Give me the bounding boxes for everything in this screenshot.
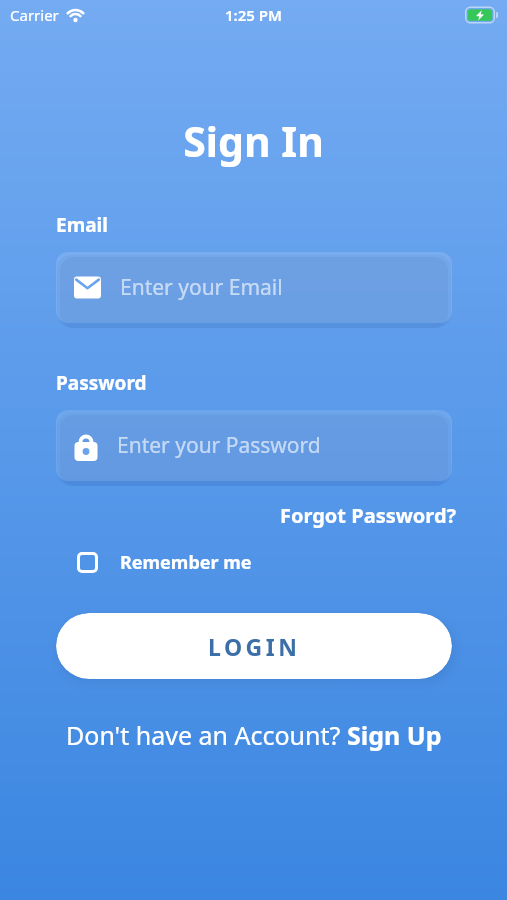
staticText: LOGIN	[208, 631, 301, 662]
button[interactable]: Sign Up	[347, 718, 442, 752]
button[interactable]: LOGIN	[56, 613, 452, 679]
staticText: Remember me	[120, 550, 252, 575]
button[interactable]: Enter your Email	[56, 252, 452, 323]
staticText: Password	[56, 370, 147, 396]
staticText: Sign In	[0, 113, 507, 169]
staticText: Enter your Password	[117, 431, 321, 460]
staticText: 1:25 PM	[225, 5, 282, 25]
staticText: Enter your Email	[120, 273, 283, 302]
button[interactable]: Enter your Password	[56, 410, 452, 481]
button[interactable]: Remember me	[77, 550, 252, 575]
staticText: Don't have an Account?	[66, 718, 347, 752]
staticText: Email	[56, 212, 108, 238]
button[interactable]: Forgot Password?	[280, 502, 457, 529]
staticText: Carrier	[10, 5, 59, 25]
